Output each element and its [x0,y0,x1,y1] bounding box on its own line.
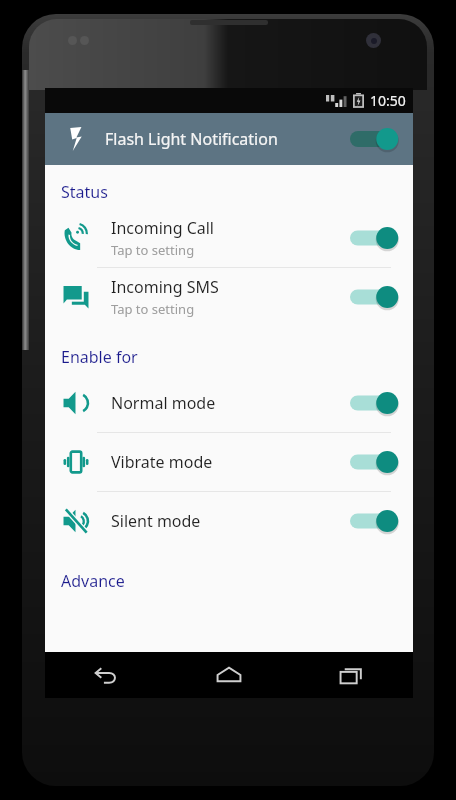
button[interactable]: Vibrate mode [45,433,413,491]
button[interactable]: Home [167,652,290,698]
button[interactable]: Incoming Call [45,209,413,267]
staticText: Enable for [61,346,413,368]
button[interactable]: Silent mode [45,492,413,550]
button[interactable]: Normal mode [45,374,413,432]
staticText: Advance [61,570,413,592]
button[interactable]: Recent apps [290,652,413,698]
staticText: Status [61,181,413,203]
staticText: Flash Light Notification [105,128,278,150]
staticText: Tap to setting [111,300,195,318]
staticText: Vibrate mode [111,451,213,473]
staticText: Incoming Call [111,217,214,239]
button[interactable]: Vibrate mode switch [347,444,403,480]
button[interactable]: Incoming Call switch [347,220,403,256]
staticText: 10:50 [370,91,406,110]
button[interactable]: Normal mode switch [347,385,403,421]
staticText: Silent mode [111,510,201,532]
button[interactable]: Silent mode switch [347,503,403,539]
staticText: Tap to setting [111,241,195,259]
button[interactable]: Incoming SMS [45,268,413,326]
button[interactable]: Flash light [59,123,91,155]
button[interactable]: Master switch [347,121,403,157]
button[interactable]: Back [45,652,167,698]
staticText: Normal mode [111,392,216,414]
staticText: Incoming SMS [111,276,219,298]
button[interactable]: Incoming SMS switch [347,279,403,315]
